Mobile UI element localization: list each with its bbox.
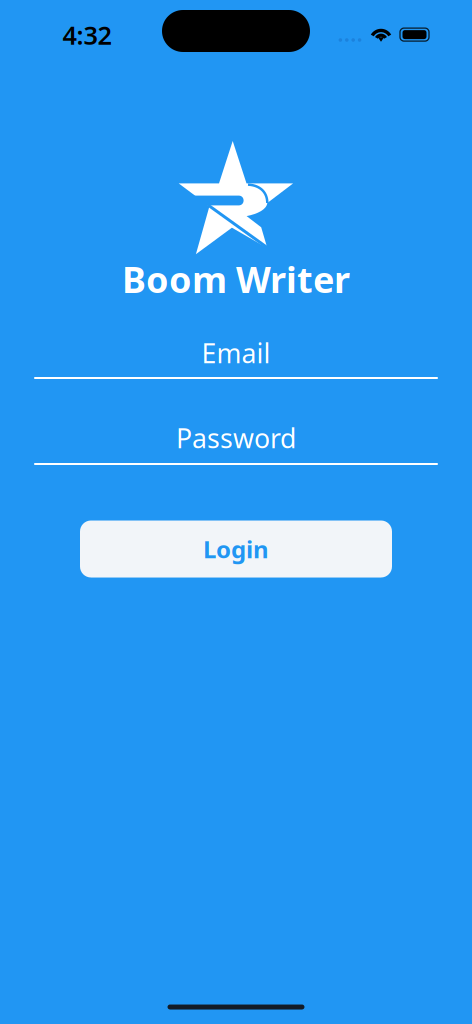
staticText: 4:32	[62, 18, 111, 52]
staticText: Password	[176, 420, 296, 456]
staticText: Login	[203, 533, 269, 565]
staticText: Boom Writer	[122, 255, 350, 303]
staticText: Email	[201, 335, 270, 371]
button[interactable]: Login	[80, 520, 392, 577]
